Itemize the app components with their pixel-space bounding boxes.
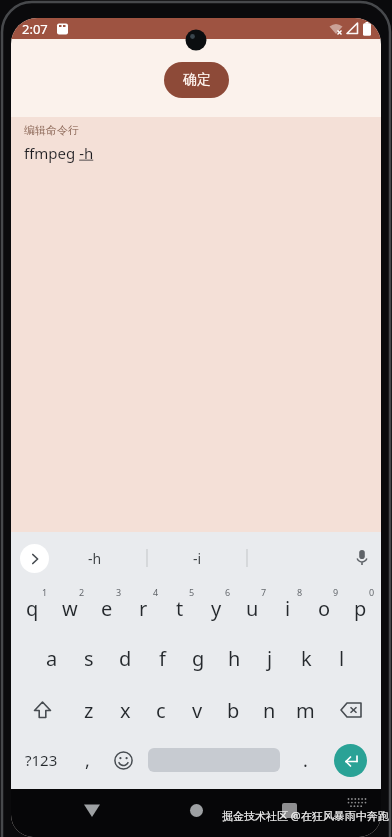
button[interactable]: [174, 795, 218, 825]
staticText: p: [354, 595, 367, 622]
button[interactable]: a: [33, 633, 70, 683]
staticText: 2:07: [22, 20, 48, 38]
button[interactable]: 确定: [164, 62, 229, 98]
staticText: e: [101, 595, 113, 622]
button[interactable]: d: [107, 633, 144, 683]
button[interactable]: n: [251, 683, 287, 737]
button[interactable]: [105, 737, 141, 783]
staticText: 8: [297, 586, 303, 598]
staticText: -h: [88, 549, 102, 568]
staticText: 1: [42, 586, 48, 598]
staticText: l: [339, 645, 345, 672]
button[interactable]: q: [14, 584, 51, 633]
staticText: 4: [153, 586, 159, 598]
staticText: y: [211, 595, 222, 622]
button[interactable]: p: [342, 584, 378, 633]
staticText: d: [119, 645, 132, 672]
staticText: .: [303, 748, 308, 773]
staticText: g: [192, 645, 205, 672]
staticText: ,: [85, 748, 90, 773]
staticText: i: [285, 595, 291, 622]
staticText: u: [246, 595, 259, 622]
staticText: 0: [369, 586, 375, 598]
button[interactable]: x: [107, 683, 143, 737]
staticText: -i: [193, 549, 202, 568]
button[interactable]: [14, 683, 70, 737]
button[interactable]: g: [180, 633, 216, 683]
button[interactable]: [267, 795, 311, 825]
staticText: r: [139, 595, 148, 622]
button[interactable]: b: [215, 683, 251, 737]
staticText: b: [227, 697, 240, 724]
staticText: ffmpeg -h: [24, 143, 94, 163]
button[interactable]: [323, 737, 378, 783]
button[interactable]: h: [216, 633, 252, 683]
button[interactable]: k: [288, 633, 324, 683]
button[interactable]: y: [198, 584, 234, 633]
staticText: m: [296, 697, 315, 724]
staticText: 3: [116, 586, 122, 598]
staticText: j: [267, 645, 273, 672]
staticText: k: [301, 645, 312, 672]
staticText: w: [62, 595, 78, 622]
staticText: 编辑命令行: [24, 123, 79, 137]
staticText: 7: [261, 586, 267, 598]
staticText: 掘金技术社区 @在狂风暴雨中奔跑: [222, 808, 389, 823]
button[interactable]: m: [287, 683, 323, 737]
staticText: f: [159, 645, 166, 672]
staticText: h: [228, 645, 241, 672]
button[interactable]: u: [234, 584, 270, 633]
button[interactable]: s: [70, 633, 107, 683]
staticText: o: [318, 595, 331, 622]
staticText: c: [156, 697, 166, 724]
button[interactable]: ?123: [14, 737, 69, 783]
button[interactable]: l: [324, 633, 360, 683]
staticText: z: [84, 697, 94, 724]
button[interactable]: e: [88, 584, 125, 633]
button[interactable]: -h: [51, 532, 139, 584]
staticText: t: [176, 595, 184, 622]
staticText: a: [46, 645, 58, 672]
button[interactable]: f: [144, 633, 180, 683]
button[interactable]: z: [70, 683, 107, 737]
button[interactable]: v: [179, 683, 215, 737]
staticText: 5: [189, 586, 195, 598]
staticText: q: [26, 595, 39, 622]
button[interactable]: ,: [69, 737, 105, 783]
staticText: x: [120, 697, 131, 724]
staticText: s: [84, 645, 94, 672]
button[interactable]: o: [306, 584, 342, 633]
staticText: n: [263, 697, 276, 724]
button[interactable]: i: [270, 584, 306, 633]
button[interactable]: t: [162, 584, 198, 633]
button[interactable]: [70, 795, 114, 825]
button[interactable]: r: [125, 584, 162, 633]
button[interactable]: [323, 683, 378, 737]
button[interactable]: 编辑命令行: [11, 117, 381, 532]
staticText: 2: [79, 586, 85, 598]
button[interactable]: w: [51, 584, 88, 633]
button[interactable]: -i: [147, 532, 247, 584]
button[interactable]: [348, 544, 376, 572]
staticText: v: [192, 697, 203, 724]
button[interactable]: [148, 748, 280, 772]
button[interactable]: j: [252, 633, 288, 683]
staticText: 6: [225, 586, 231, 598]
staticText: 确定: [183, 71, 211, 89]
staticText: 9: [333, 586, 339, 598]
staticText: ?123: [25, 750, 58, 770]
button[interactable]: [20, 544, 49, 573]
button[interactable]: .: [287, 737, 323, 783]
button[interactable]: c: [143, 683, 179, 737]
